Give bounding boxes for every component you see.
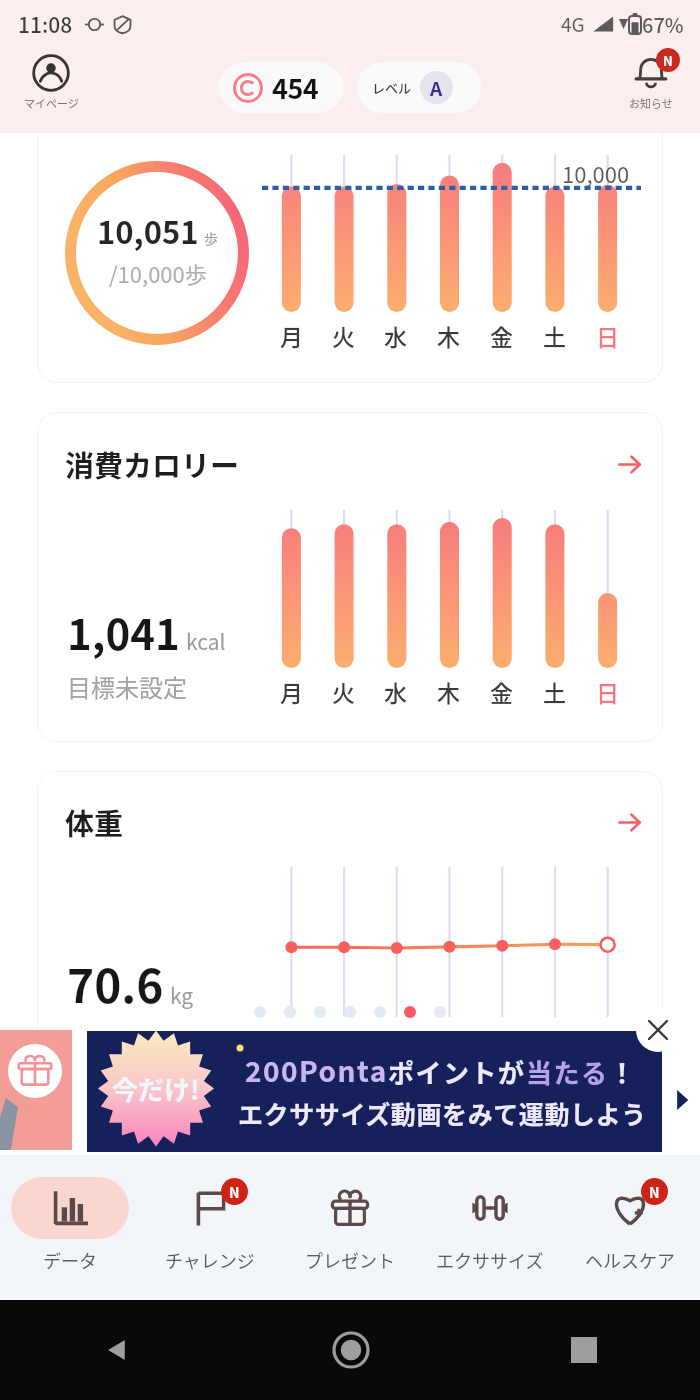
staticText: 土	[543, 675, 566, 708]
staticText: 体重	[65, 801, 124, 843]
button[interactable]: 消費カロリー	[37, 412, 663, 742]
staticText: ！	[609, 1053, 636, 1091]
button[interactable]: プレゼント	[280, 1177, 420, 1273]
staticText: エクササイズ動画をみて運動しよう	[238, 1095, 647, 1131]
staticText: ヘルスケア	[585, 1247, 675, 1273]
staticText: N	[229, 1182, 240, 1202]
button[interactable]: マイページ	[16, 54, 86, 111]
staticText: エクササイズ	[436, 1247, 544, 1273]
button[interactable]: データ	[0, 1177, 140, 1273]
staticText: 4G	[561, 10, 585, 38]
staticText: 200Ponta	[245, 1050, 388, 1091]
staticText: 水	[384, 319, 407, 352]
staticText: N	[649, 1182, 660, 1202]
button[interactable]: プレゼント	[0, 1030, 72, 1150]
staticText: 月	[280, 675, 303, 708]
staticText: チャレンジ	[165, 1247, 255, 1273]
other: 戻る	[103, 1336, 131, 1364]
staticText: 水	[384, 675, 407, 708]
staticText: レベル	[372, 78, 412, 97]
button[interactable]: 10,051	[37, 133, 663, 383]
staticText: お知らせ	[629, 95, 673, 111]
staticText: 10,051	[97, 208, 199, 253]
staticText: 当たる	[526, 1053, 609, 1091]
button[interactable]: N	[140, 1177, 280, 1273]
staticText: 1,041	[67, 601, 180, 662]
staticText: 日	[596, 319, 619, 352]
staticText: 今だけ!	[112, 1070, 200, 1108]
button[interactable]: 454	[219, 62, 343, 113]
staticText: マイページ	[24, 95, 79, 111]
staticText: プレゼント	[305, 1247, 395, 1273]
staticText: 67%	[642, 10, 684, 39]
staticText: kg	[170, 980, 194, 1010]
staticText: 木	[437, 319, 460, 352]
staticText: A	[430, 74, 443, 102]
staticText: 金	[490, 675, 513, 708]
staticText: 土	[543, 319, 566, 352]
other: ホーム	[332, 1331, 370, 1369]
staticText: 月	[280, 319, 303, 352]
staticText: 日	[596, 675, 619, 708]
staticText: 木	[437, 675, 460, 708]
staticText: /10,000歩	[109, 257, 207, 289]
button[interactable]: お知らせ	[616, 54, 686, 111]
button[interactable]: 詳細	[619, 811, 641, 833]
staticText: 消費カロリー	[65, 443, 240, 485]
staticText: 目標未設定	[67, 669, 187, 704]
staticText: 火	[332, 319, 355, 352]
button[interactable]: エクササイズ	[420, 1177, 560, 1273]
other: 次へ	[675, 1090, 689, 1110]
staticText: 金	[490, 319, 513, 352]
staticText: 火	[332, 675, 355, 708]
button[interactable]: 詳細	[619, 453, 641, 475]
staticText: ポイントが	[388, 1053, 526, 1091]
staticText: kcal	[186, 626, 226, 656]
staticText: N	[663, 51, 673, 70]
button[interactable]: レベル	[357, 62, 481, 113]
staticText: データ	[43, 1247, 97, 1273]
button[interactable]: 閉じる	[636, 1008, 680, 1052]
staticText: 454	[272, 68, 319, 107]
staticText: 歩	[204, 228, 218, 248]
staticText: 10,000	[562, 157, 630, 189]
button[interactable]: N	[560, 1177, 700, 1273]
staticText: 70.6	[67, 950, 164, 1017]
staticText: 11:08	[18, 9, 73, 39]
button[interactable]: 体重	[37, 771, 663, 1028]
button[interactable]: 今だけ!	[87, 1031, 662, 1152]
